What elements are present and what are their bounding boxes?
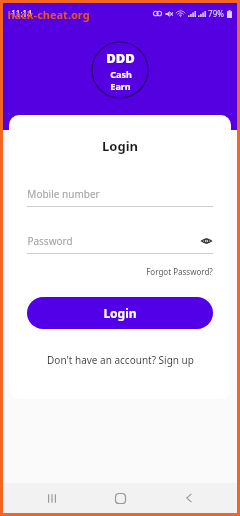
staticText: 11:14: [11, 8, 32, 19]
staticText: Login: [102, 137, 138, 155]
staticText: Earn: [110, 80, 131, 92]
button[interactable]: Login: [27, 297, 213, 329]
button[interactable]: Password: [27, 233, 213, 249]
staticText: 79%: [208, 8, 224, 19]
button[interactable]: Forgot Password?: [27, 266, 213, 277]
button[interactable]: Don't have an account? Sign up: [27, 353, 213, 367]
staticText: Password: [27, 234, 73, 248]
button[interactable]: Recent apps: [32, 483, 72, 513]
staticText: Login: [103, 305, 137, 321]
staticText: Don't have an account? Sign up: [47, 353, 194, 367]
staticText: Forgot Password?: [146, 266, 213, 277]
button[interactable]: Mobile number: [27, 186, 213, 202]
staticText: Cash: [110, 68, 132, 80]
staticText: Mobile number: [27, 187, 100, 201]
staticText: DDD: [106, 49, 135, 67]
button[interactable]: Home: [100, 483, 140, 513]
button[interactable]: Show password: [199, 234, 213, 248]
button[interactable]: Back: [169, 483, 209, 513]
staticText: hack-cheat.org: [7, 7, 90, 22]
